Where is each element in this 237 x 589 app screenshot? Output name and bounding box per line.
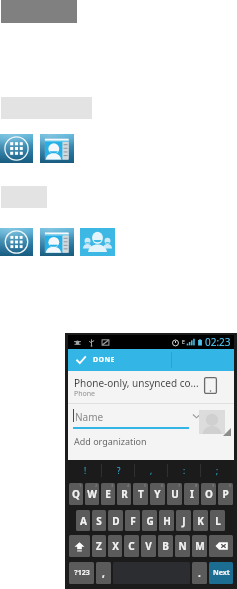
button[interactable] [69,535,90,557]
button[interactable]: B [158,535,173,557]
button[interactable]: : [168,460,201,481]
button[interactable]: L [210,510,225,531]
button[interactable]: A [76,510,90,531]
staticText: Phone-only, unsynced co... [74,376,199,390]
staticText: V [145,539,152,553]
button[interactable]: O [201,483,216,505]
staticText: E [182,339,185,346]
staticText: 8 [195,483,198,488]
staticText: I [190,487,194,501]
staticText: W [87,487,97,501]
button[interactable] [209,535,233,557]
button[interactable]: Q [69,483,83,505]
staticText: 7 [178,483,181,488]
staticText: N [178,539,187,553]
button[interactable]: E [101,483,115,505]
staticText: U [171,487,179,501]
staticText: 02:23 [205,335,231,349]
button[interactable]: . [192,562,207,584]
button[interactable]: Z [92,535,106,557]
staticText: J [182,514,186,528]
button[interactable]: H [159,510,174,531]
staticText: M [195,539,205,553]
button[interactable]: Y [150,483,165,505]
button[interactable]: S [92,510,106,531]
button[interactable]: All apps [0,134,33,163]
staticText: X [112,539,119,553]
button[interactable]: X [108,535,122,557]
staticText: 0 [229,483,232,488]
button[interactable]: ! [68,460,102,481]
staticText: A [80,514,87,528]
button[interactable]: People [40,228,74,256]
button[interactable]: , [135,460,168,481]
staticText: Next [213,568,230,578]
button[interactable]: N [175,535,190,557]
staticText: L [215,514,221,528]
button[interactable]: ?123 [69,562,94,584]
button[interactable]: K [193,510,208,531]
button[interactable]: People [40,134,74,163]
button[interactable]: Groups [80,228,115,256]
button[interactable]: D [108,510,123,531]
staticText: D [112,514,120,528]
button[interactable]: M [192,535,207,557]
button[interactable]: I [184,483,199,505]
staticText: H [163,514,171,528]
button[interactable]: J [176,510,191,531]
staticText: C [128,539,135,553]
staticText: G [146,514,154,528]
button[interactable]: All apps [0,228,33,256]
staticText: : [183,465,186,476]
staticText: Add organization [74,435,147,447]
staticText: 5 [144,483,147,488]
button[interactable]: , [96,562,111,584]
staticText: 9 [212,483,215,488]
staticText: DONE [93,355,115,365]
staticText: K [197,514,204,528]
staticText: 4 [127,483,130,488]
staticText: B [162,539,169,553]
staticText: P [222,487,229,501]
staticText: E [105,487,111,501]
button[interactable]: U [167,483,182,505]
staticText: Q [72,487,80,501]
button[interactable]: G [142,510,157,531]
button[interactable]: ; [201,460,234,481]
button[interactable]: V [141,535,156,557]
staticText: ? [117,465,121,476]
button[interactable]: R [117,483,131,505]
staticText: 6 [161,483,164,488]
staticText: ; [216,465,219,476]
staticText: 3 [111,483,114,488]
staticText: 2 [95,483,98,488]
staticText: S [96,514,102,528]
staticText: 1 [79,483,82,488]
button[interactable]: P [218,483,233,505]
staticText: . [198,566,201,580]
button[interactable]: ? [102,460,135,481]
staticText: O [205,487,213,501]
staticText: Y [154,487,161,501]
staticText: T [138,487,144,501]
staticText: ?123 [74,568,90,578]
staticText: Z [96,539,102,553]
button[interactable]: C [124,535,139,557]
staticText: R [121,487,128,501]
staticText: , [150,465,153,476]
staticText: , [102,566,105,580]
staticText: Phone [74,389,96,399]
button[interactable]: F [125,510,140,531]
button[interactable]: T [133,483,148,505]
staticText: ! [84,465,87,476]
button[interactable]: Next [209,562,233,584]
staticText: Name [75,410,104,424]
button[interactable]: W [85,483,99,505]
staticText: F [130,514,136,528]
